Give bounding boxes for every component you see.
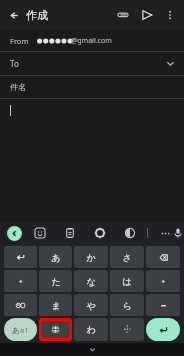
button[interactable]: Switch input language <box>42 321 69 338</box>
button[interactable]: From <box>0 30 184 51</box>
button[interactable]: Undo <box>4 246 37 268</box>
staticText: わ <box>86 324 96 335</box>
button[interactable]: あ <box>39 246 72 268</box>
button[interactable]: Theme <box>123 226 137 240</box>
button[interactable]: 件名 <box>0 76 184 98</box>
staticText: あ <box>51 252 61 263</box>
button[interactable]: Move cursor right <box>146 270 180 292</box>
button[interactable]: ま <box>39 294 72 316</box>
button[interactable]: わ <box>74 318 108 341</box>
staticText: a1 <box>20 325 29 335</box>
staticText: は <box>122 276 132 287</box>
button[interactable]: か <box>74 246 108 268</box>
button[interactable]: な <box>74 270 108 292</box>
button[interactable]: Attach file <box>111 3 135 27</box>
button[interactable]: Hide keyboard <box>82 344 102 355</box>
button[interactable]: Back <box>0 2 26 28</box>
staticText: た <box>51 276 61 287</box>
staticText: か <box>86 252 96 263</box>
button[interactable]: た <box>39 270 72 292</box>
staticText: ま <box>51 300 61 311</box>
staticText: さ <box>122 252 132 263</box>
button[interactable]: Stickers <box>33 226 47 240</box>
button[interactable]: Enter <box>146 318 180 341</box>
button[interactable]: Emoji and symbols <box>4 294 37 316</box>
button[interactable]: Voice input <box>172 225 184 241</box>
button[interactable]: Settings <box>93 226 107 240</box>
staticText: な <box>86 276 96 287</box>
button[interactable]: More options <box>159 4 181 26</box>
staticText: @gmail.com <box>71 36 112 46</box>
staticText: や <box>86 300 96 311</box>
button[interactable]: Move cursor left <box>4 270 37 292</box>
button[interactable]: ら <box>110 294 144 316</box>
staticText: 作成 <box>26 8 48 22</box>
button[interactable]: Punctuation <box>110 318 144 341</box>
button[interactable]: や <box>74 294 108 316</box>
button[interactable]: は <box>110 270 144 292</box>
staticText: To <box>10 58 19 69</box>
staticText: 件名 <box>10 82 26 92</box>
button[interactable]: Send <box>135 3 159 27</box>
button[interactable] <box>0 99 184 222</box>
button[interactable]: Expand toolbar <box>7 226 22 241</box>
staticText: ら <box>122 300 132 311</box>
staticText: From <box>10 36 29 46</box>
button[interactable]: More tools <box>158 226 172 240</box>
button[interactable]: さ <box>110 246 144 268</box>
button[interactable]: Backspace <box>146 246 180 268</box>
button[interactable]: Long vowel <box>146 294 180 316</box>
staticText: あ <box>12 326 20 335</box>
button[interactable]: To <box>0 52 184 75</box>
button[interactable]: Clipboard <box>63 226 77 240</box>
button[interactable]: あ <box>4 318 37 341</box>
